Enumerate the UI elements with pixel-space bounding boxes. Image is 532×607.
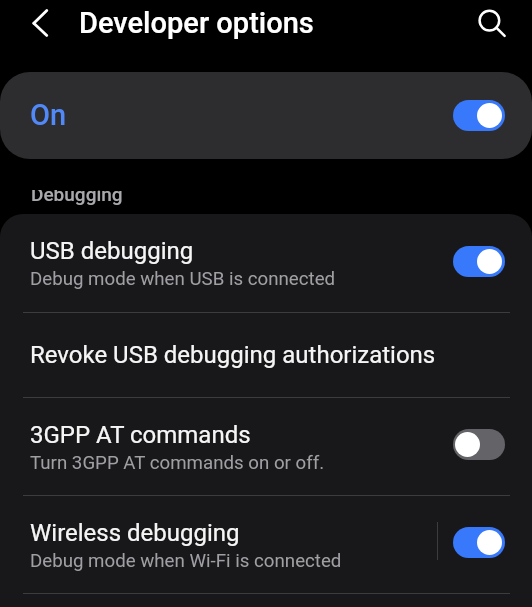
button[interactable]: Search bbox=[468, 1, 512, 45]
staticText: On bbox=[30, 98, 67, 132]
staticText: Debug mode when Wi-Fi is connected bbox=[30, 550, 342, 572]
staticText: Wireless debugging bbox=[30, 519, 240, 547]
staticText: Turn 3GPP AT commands on or off. bbox=[30, 452, 325, 474]
button[interactable]: USB debugging bbox=[0, 214, 532, 312]
staticText: Developer options bbox=[79, 6, 314, 40]
button[interactable]: Switch on bbox=[453, 527, 505, 558]
staticText: Revoke USB debugging authorizations bbox=[30, 341, 436, 369]
staticText: 3GPP AT commands bbox=[30, 421, 251, 449]
button[interactable]: Switch on bbox=[453, 246, 505, 277]
button[interactable]: On bbox=[0, 72, 532, 159]
button[interactable]: Switch on bbox=[453, 100, 505, 131]
staticText: Debug mode when USB is connected bbox=[30, 268, 336, 290]
staticText: Debugging bbox=[31, 190, 123, 205]
button[interactable]: Back bbox=[18, 1, 62, 45]
staticText: USB debugging bbox=[30, 237, 194, 265]
button[interactable]: Wireless debugging bbox=[0, 496, 532, 593]
button[interactable]: Revoke USB debugging authorizations bbox=[0, 313, 532, 397]
button[interactable]: 3GPP AT commands bbox=[0, 398, 532, 495]
button[interactable]: Switch off bbox=[453, 429, 505, 460]
